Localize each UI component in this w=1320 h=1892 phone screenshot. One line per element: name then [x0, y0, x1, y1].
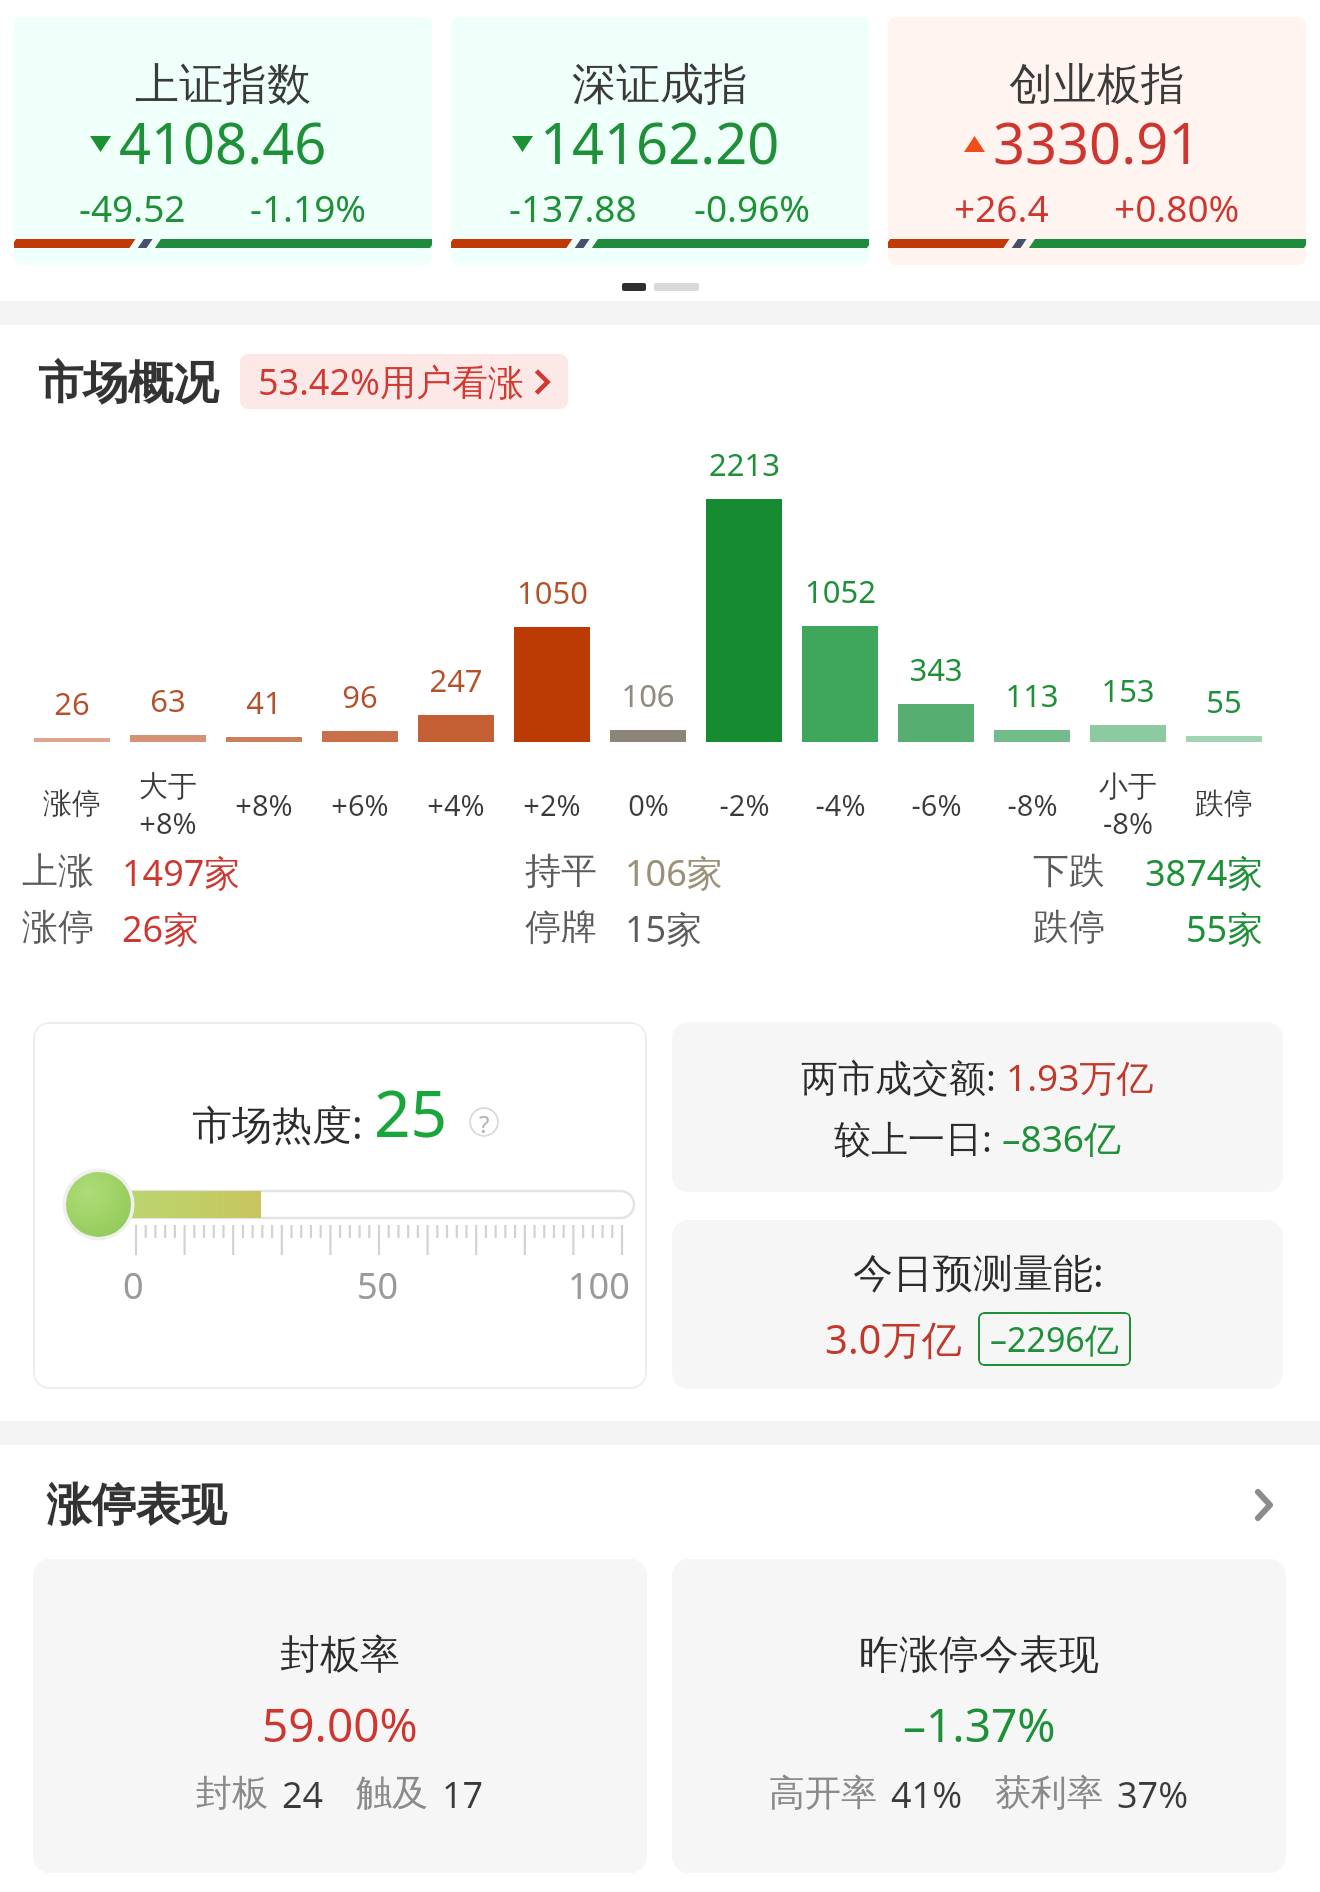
staticText: 14162.20 [540, 104, 780, 180]
staticText: 停牌 [525, 904, 597, 949]
staticText: 37% [1117, 1770, 1189, 1819]
staticText: 247 [429, 659, 483, 701]
staticText: 创业板指 [1009, 57, 1185, 112]
staticText: 涨停表现 [46, 1477, 226, 1534]
staticText: 25 [374, 1069, 448, 1156]
staticText: 今日预测量能: [853, 1244, 1104, 1299]
staticText: -0.96% [694, 182, 811, 232]
button[interactable]: 创业板指 [888, 17, 1306, 265]
staticText: +0.80% [1114, 182, 1240, 232]
staticText: 343 [909, 648, 963, 690]
staticText: 1052 [805, 570, 876, 612]
button[interactable]: 昨涨停今表现 [672, 1559, 1286, 1873]
staticText: 1497家 [122, 848, 241, 897]
staticText: 高开率 [769, 1770, 877, 1815]
staticText: –2296亿 [990, 1316, 1119, 1362]
staticText: 17 [442, 1770, 484, 1819]
staticText: +2% [523, 785, 581, 824]
staticText: 0 [123, 1261, 144, 1310]
staticText: 下跌 [1033, 848, 1105, 893]
staticText: 小于 -8% [1099, 768, 1157, 843]
staticText: +26.4 [954, 182, 1049, 232]
staticText: 持平 [525, 848, 597, 893]
staticText: 3.0万亿 [825, 1311, 962, 1366]
staticText: 4108.46 [119, 104, 327, 180]
staticText: 2213 [709, 443, 780, 485]
staticText: 41 [246, 681, 282, 723]
staticText: 59.00% [262, 1693, 418, 1756]
staticText: 113 [1005, 674, 1059, 716]
staticText: 市场热度: [192, 1096, 363, 1151]
button[interactable]: 第 1 页 [622, 283, 646, 291]
staticText: 上涨 [22, 848, 94, 893]
staticText: +4% [427, 785, 485, 824]
staticText: -1.19% [250, 182, 367, 232]
other: 查看涨停表现 [1255, 1489, 1273, 1521]
staticText: 0% [628, 785, 669, 824]
staticText: -2% [719, 785, 770, 824]
staticText: 26 [54, 682, 90, 724]
staticText: –1.37% [903, 1693, 1056, 1756]
staticText: 24 [282, 1770, 324, 1819]
staticText: 55 [1206, 680, 1242, 722]
staticText: 1.93万亿 [1006, 1051, 1154, 1102]
button[interactable]: 53.42%用户看涨 [240, 354, 568, 409]
staticText: 26家 [122, 904, 200, 953]
staticText: 3874家 [1145, 848, 1264, 897]
staticText: 上证指数 [135, 57, 311, 112]
staticText: 15家 [625, 904, 703, 953]
staticText: 较上一日: [834, 1112, 1002, 1163]
button[interactable]: 上证指数 [14, 17, 432, 265]
staticText: 53.42%用户看涨 [258, 357, 524, 406]
staticText: 1050 [517, 571, 588, 613]
staticText: +8% [235, 785, 293, 824]
staticText: 涨停 [43, 785, 101, 822]
staticText: –836亿 [1002, 1112, 1121, 1163]
staticText: -4% [815, 785, 866, 824]
staticText: 100 [568, 1261, 630, 1310]
staticText: +6% [331, 785, 389, 824]
staticText: 跌停 [1195, 785, 1253, 822]
staticText: -6% [911, 785, 962, 824]
staticText: -49.52 [79, 182, 186, 232]
staticText: 153 [1101, 669, 1155, 711]
staticText: 跌停 [1033, 904, 1105, 949]
staticText: -137.88 [509, 182, 637, 232]
staticText: 昨涨停今表现 [859, 1629, 1099, 1679]
button[interactable]: 两市成交额: [672, 1022, 1283, 1192]
staticText: -8% [1007, 785, 1058, 824]
staticText: 两市成交额: [801, 1051, 1006, 1102]
staticText: ? [479, 1107, 490, 1137]
button[interactable]: 今日预测量能: [672, 1220, 1283, 1389]
staticText: 55家 [1186, 904, 1264, 953]
staticText: 41% [891, 1770, 963, 1819]
staticText: 触及 [356, 1770, 428, 1815]
staticText: 3330.91 [993, 104, 1201, 180]
button[interactable]: 涨停表现 [0, 1473, 1320, 1537]
button[interactable]: 封板率 [33, 1559, 647, 1873]
staticText: 封板率 [280, 1629, 400, 1679]
staticText: 96 [342, 675, 378, 717]
staticText: 涨停 [22, 904, 94, 949]
staticText: 106家 [625, 848, 723, 897]
staticText: 封板 [196, 1770, 268, 1815]
staticText: 市场概况 [38, 355, 218, 412]
staticText: 50 [357, 1261, 399, 1310]
button[interactable]: 深证成指 [451, 17, 869, 265]
staticText: 106 [621, 674, 675, 716]
staticText: 大于 +8% [139, 768, 197, 843]
staticText: 63 [150, 679, 186, 721]
button[interactable]: 市场热度: [33, 1022, 647, 1389]
staticText: 获利率 [995, 1770, 1103, 1815]
staticText: 深证成指 [572, 57, 748, 112]
